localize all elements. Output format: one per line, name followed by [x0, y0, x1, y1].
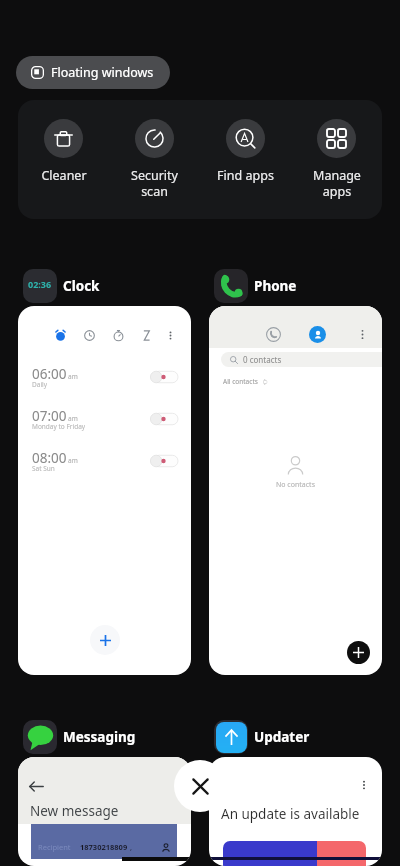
button[interactable]: 08:00 — [18, 449, 191, 475]
staticText: An update is available — [221, 805, 360, 823]
staticText: Find apps — [217, 167, 274, 184]
staticText: No contacts — [276, 480, 315, 490]
button[interactable]: Toggle alarm — [150, 368, 180, 386]
button[interactable]: Tab — [52, 327, 68, 343]
button[interactable]: Manage apps — [291, 100, 382, 199]
button[interactable]: More options — [209, 757, 382, 866]
button[interactable]: Toggle alarm — [150, 452, 180, 470]
staticText: am — [68, 414, 78, 423]
button[interactable]: Tab — [110, 327, 126, 343]
button[interactable]: More options — [354, 775, 374, 795]
staticText: 06:00 — [32, 365, 67, 383]
button[interactable]: New message — [18, 757, 191, 866]
staticText: , — [128, 842, 132, 852]
button[interactable]: Contacts tab — [209, 306, 382, 675]
staticText: 08:00 — [32, 449, 67, 467]
button[interactable]: Add alarm — [90, 625, 120, 655]
button[interactable]: 06:00 — [18, 365, 191, 391]
button[interactable]: Floating windows — [16, 56, 170, 89]
button[interactable]: Tab — [81, 327, 97, 343]
staticText: Security scan — [131, 167, 178, 199]
staticText: Manage apps — [313, 167, 361, 199]
staticText: 02:36 — [28, 278, 52, 290]
button[interactable]: Cleaner — [18, 100, 109, 184]
staticText: Phone — [254, 277, 297, 295]
staticText: Clock — [63, 277, 100, 295]
staticText: 0 contacts — [243, 354, 282, 365]
button[interactable]: Tab — [18, 306, 191, 675]
button[interactable]: Toggle alarm — [150, 410, 180, 428]
staticText: Monday to Friday — [32, 422, 86, 431]
button[interactable]: Security scan — [109, 100, 200, 199]
button[interactable]: Tab — [162, 327, 178, 343]
button[interactable]: Tab — [138, 327, 154, 343]
staticText: am — [68, 372, 78, 381]
staticText: Updater — [254, 728, 310, 746]
staticText: 18730218809 — [80, 842, 128, 852]
staticText: Recipient — [38, 842, 71, 852]
button[interactable]: 0 contacts — [221, 352, 382, 367]
staticText: 07:00 — [32, 407, 67, 425]
button[interactable]: All contacts — [223, 377, 268, 386]
button[interactable]: Find apps — [200, 100, 291, 184]
staticText: New message — [30, 802, 119, 820]
button[interactable]: Contacts tab — [309, 326, 326, 343]
button[interactable]: Add contact — [347, 641, 370, 664]
staticText: Sat Sun — [32, 464, 55, 473]
staticText: am — [68, 456, 78, 465]
staticText: Messaging — [63, 728, 136, 746]
staticText: Daily — [32, 380, 48, 389]
button[interactable]: 07:00 — [18, 407, 191, 433]
button[interactable]: Close all — [174, 760, 226, 812]
staticText: Cleaner — [41, 167, 87, 184]
staticText: Floating windows — [51, 64, 154, 81]
staticText: All contacts — [223, 377, 258, 386]
